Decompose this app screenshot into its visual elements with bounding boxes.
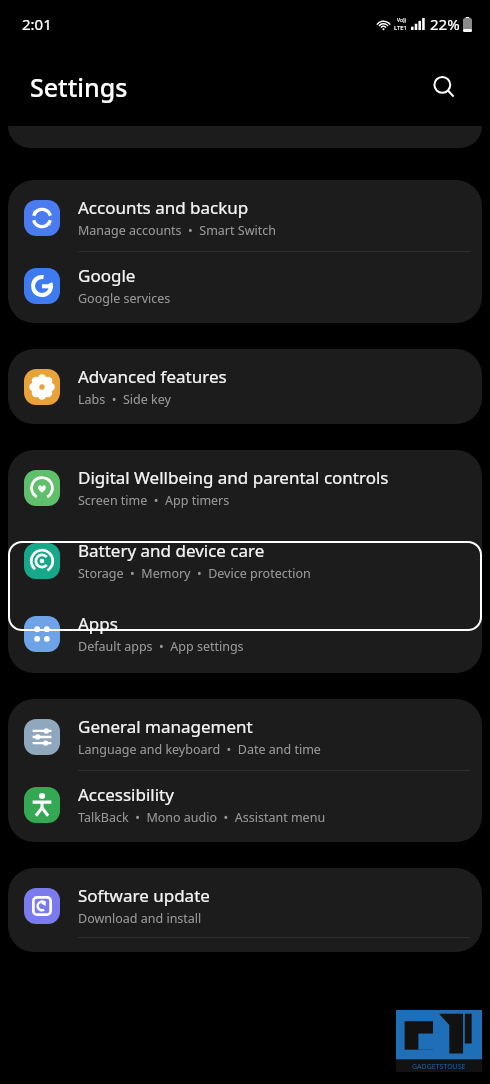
button[interactable]: Accounts and backup: [8, 180, 482, 251]
staticText: Digital Wellbeing and parental controls: [78, 466, 389, 489]
staticText: Advanced features: [78, 365, 227, 388]
staticText: Accessibility: [78, 783, 174, 806]
staticText: LTE1: [394, 24, 408, 32]
staticText: Labs • Side key: [78, 391, 171, 408]
staticText: Google services: [78, 290, 171, 307]
staticText: 2:01: [22, 14, 52, 34]
staticText: GADGETSTOUSE: [412, 1062, 466, 1072]
staticText: Google: [78, 264, 136, 287]
staticText: 22%: [430, 14, 460, 34]
button[interactable]: Google: [8, 252, 482, 323]
button[interactable]: Software update: [8, 868, 482, 937]
button[interactable]: General management: [8, 699, 482, 770]
staticText: Settings: [30, 70, 128, 104]
button[interactable]: Apps: [8, 598, 482, 673]
staticText: Apps: [78, 612, 118, 635]
staticText: Language and keyboard • Date and time: [78, 741, 321, 758]
staticText: Accounts and backup: [78, 196, 249, 219]
button[interactable]: Search: [424, 67, 464, 107]
staticText: Storage • Memory • Device protection: [78, 565, 311, 582]
button[interactable]: Digital Wellbeing and parental controls: [8, 450, 482, 523]
button[interactable]: Accessibility: [8, 771, 482, 842]
staticText: Battery and device care: [78, 539, 265, 562]
button[interactable]: Battery and device care: [8, 523, 482, 598]
staticText: Download and install: [78, 910, 202, 927]
staticText: Screen time • App timers: [78, 492, 230, 509]
button[interactable]: [8, 126, 482, 148]
staticText: Software update: [78, 884, 210, 907]
staticText: General management: [78, 715, 253, 738]
staticText: Vo)): [397, 17, 406, 24]
staticText: Manage accounts • Smart Switch: [78, 222, 276, 239]
staticText: TalkBack • Mono audio • Assistant menu: [78, 809, 326, 826]
staticText: Default apps • App settings: [78, 638, 244, 655]
button[interactable]: Advanced features: [8, 349, 482, 424]
